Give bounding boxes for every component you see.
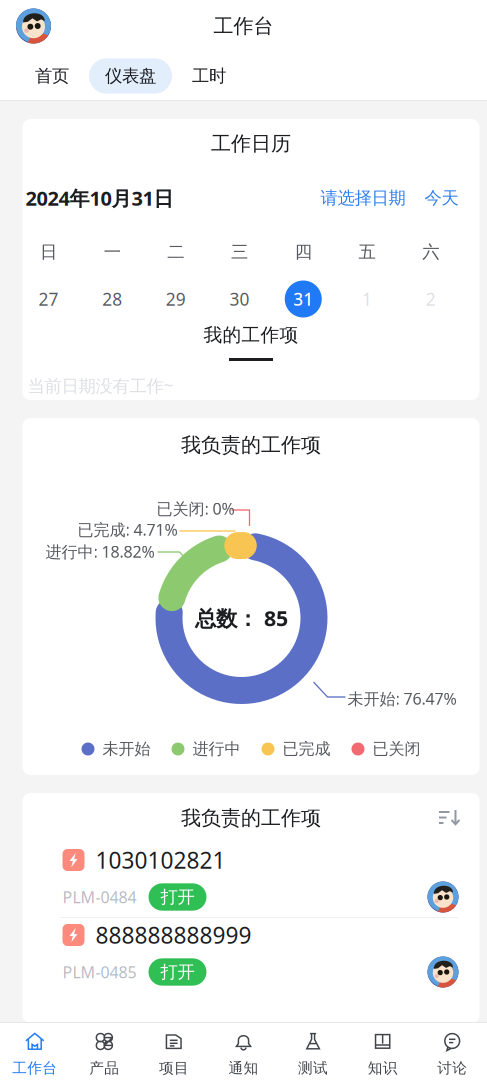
staticText: 未开始 <box>102 739 150 759</box>
button[interactable]: 测试 <box>278 1024 348 1084</box>
staticText: 项目 <box>159 1059 189 1077</box>
button[interactable]: 29 <box>144 276 208 322</box>
staticText: 1030102821 <box>95 845 225 875</box>
button[interactable]: 工时 <box>176 58 242 94</box>
staticText: 总数： 85 <box>195 604 288 632</box>
staticText: 三 <box>231 241 248 263</box>
staticText: 请选择日期 <box>320 187 405 209</box>
button[interactable]: 请选择日期 <box>320 187 405 209</box>
button[interactable]: 27 <box>17 276 80 322</box>
staticText: 工作台 <box>12 1059 57 1077</box>
staticText: 二 <box>167 241 184 263</box>
staticText: 测试 <box>298 1059 328 1077</box>
staticText: 一 <box>104 241 121 263</box>
staticText: 888888888999 <box>95 920 251 950</box>
staticText: 今天 <box>424 187 458 209</box>
staticText: 27 <box>38 287 58 310</box>
button[interactable]: 我的工作项 <box>22 322 479 371</box>
staticText: 工作日历 <box>211 131 291 156</box>
button[interactable]: 2 <box>399 276 462 322</box>
staticText: 首页 <box>35 65 69 87</box>
staticText: 日 <box>40 241 57 263</box>
staticText: 工作台 <box>213 14 273 38</box>
staticText: 已关闭 <box>372 739 420 759</box>
button[interactable]: 工作台 <box>0 1024 70 1084</box>
button[interactable]: 今天 <box>405 187 458 209</box>
button[interactable]: 888888888999 <box>22 918 479 992</box>
staticText: 29 <box>166 287 186 310</box>
button[interactable]: 31 <box>271 276 335 322</box>
staticText: 31 <box>293 287 313 310</box>
staticText: 讨论 <box>437 1059 467 1077</box>
staticText: 当前日期没有工作~ <box>27 374 173 397</box>
button[interactable]: 讨论 <box>417 1024 487 1084</box>
staticText: 仪表盘 <box>105 65 156 87</box>
button[interactable]: 1030102821 <box>22 843 479 917</box>
staticText: 我负责的工作项 <box>181 806 321 830</box>
staticText: 工时 <box>192 65 226 87</box>
staticText: 我负责的工作项 <box>181 433 321 457</box>
staticText: 五 <box>358 241 375 263</box>
button[interactable]: 个人头像 <box>16 8 51 43</box>
staticText: 已完成 <box>282 739 330 759</box>
staticText: 进行中: 18.82% <box>45 541 154 562</box>
staticText: 打开 <box>160 886 194 908</box>
button[interactable]: 仪表盘 <box>89 58 172 94</box>
staticText: 六 <box>422 241 439 263</box>
button[interactable]: 通知 <box>209 1024 278 1084</box>
staticText: 已关闭: 0% <box>156 498 234 519</box>
staticText: 已完成: 4.71% <box>77 519 177 540</box>
staticText: PLM-0485 <box>62 961 136 983</box>
staticText: 打开 <box>160 961 194 983</box>
staticText: 28 <box>102 287 122 310</box>
staticText: 2024年10月31日 <box>25 185 173 211</box>
button[interactable]: 知识 <box>348 1024 417 1084</box>
button[interactable]: 30 <box>208 276 271 322</box>
staticText: 我的工作项 <box>203 323 298 346</box>
button[interactable]: 排序 <box>437 807 461 828</box>
staticText: 知识 <box>368 1059 398 1077</box>
button[interactable]: 产品 <box>70 1024 139 1084</box>
button[interactable]: 首页 <box>19 58 85 94</box>
staticText: 进行中 <box>192 739 240 759</box>
staticText: 1 <box>362 287 372 310</box>
staticText: 未开始: 76.47% <box>347 688 456 709</box>
staticText: 四 <box>295 241 312 263</box>
staticText: 2 <box>426 287 436 310</box>
staticText: 产品 <box>89 1059 119 1077</box>
staticText: 30 <box>230 287 250 310</box>
staticText: 通知 <box>228 1059 258 1077</box>
button[interactable]: 28 <box>80 276 144 322</box>
staticText: PLM-0484 <box>62 886 136 908</box>
button[interactable]: 项目 <box>139 1024 209 1084</box>
